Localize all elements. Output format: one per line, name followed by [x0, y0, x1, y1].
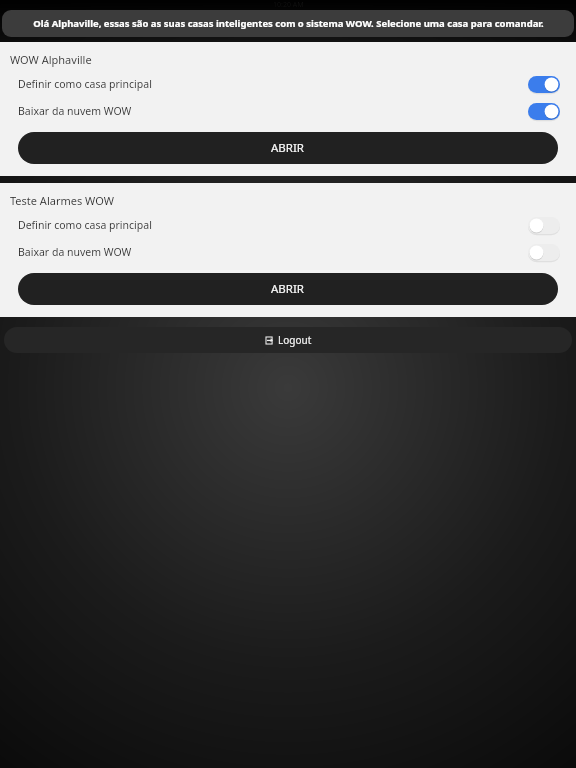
staticText: Olá Alphaville, essas são as suas casas …	[33, 17, 544, 30]
staticText: WOW Alphaville	[10, 52, 92, 67]
staticText: Baixar da nuvem WOW	[18, 245, 528, 259]
button[interactable]: ABRIR	[18, 273, 558, 305]
staticText: Logout	[278, 333, 312, 347]
button[interactable]: Baixar da nuvem WOW	[0, 102, 576, 120]
button[interactable]: Baixar da nuvem WOW	[0, 243, 576, 261]
button[interactable]: Definir como casa principal	[0, 216, 576, 234]
staticText: ABRIR	[271, 140, 305, 156]
staticText: Definir como casa principal	[18, 218, 528, 232]
staticText: ABRIR	[271, 281, 305, 297]
staticText: Baixar da nuvem WOW	[18, 104, 528, 118]
staticText: Definir como casa principal	[18, 77, 528, 91]
button[interactable]: Definir como casa principal	[0, 75, 576, 93]
staticText: 10:20 AM	[273, 0, 304, 10]
button[interactable]: Logout	[4, 327, 572, 353]
staticText: Teste Alarmes WOW	[10, 193, 114, 208]
button[interactable]: ABRIR	[18, 132, 558, 164]
